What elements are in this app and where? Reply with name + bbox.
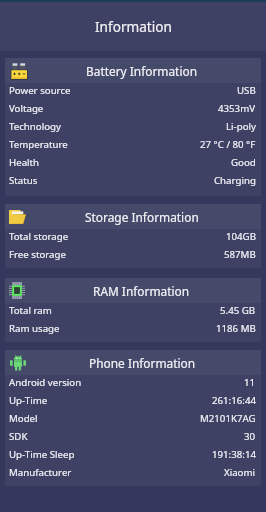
other: Phone xyxy=(9,355,27,371)
staticText: Xiaomi xyxy=(224,466,256,479)
staticText: 587MB xyxy=(224,248,256,261)
staticText: RAM Information xyxy=(93,283,190,299)
staticText: Free storage xyxy=(9,248,66,261)
button[interactable]: Voltage xyxy=(5,101,261,119)
button[interactable]: Temperature xyxy=(5,137,261,155)
staticText: Android version xyxy=(9,376,82,389)
staticText: Phone Information xyxy=(89,355,196,371)
staticText: 11 xyxy=(244,376,256,389)
staticText: Health xyxy=(9,156,40,169)
staticText: 4353mV xyxy=(218,102,256,115)
staticText: Battery Information xyxy=(86,63,198,79)
staticText: 191:38:14 xyxy=(212,448,256,461)
staticText: 27 °C / 80 °F xyxy=(200,138,256,151)
staticText: 261:16:44 xyxy=(212,394,256,407)
staticText: Charging xyxy=(214,174,256,187)
staticText: Li-poly xyxy=(226,120,256,133)
button[interactable]: Manufacturer xyxy=(5,465,261,483)
other: Battery xyxy=(9,63,27,79)
button[interactable]: Health xyxy=(5,155,261,173)
button[interactable]: Storage xyxy=(5,204,261,229)
staticText: Information xyxy=(95,17,172,36)
staticText: Status xyxy=(9,174,38,187)
button[interactable]: Power source xyxy=(5,83,261,101)
staticText: Model xyxy=(9,412,38,425)
staticText: Good xyxy=(231,156,256,169)
staticText: Voltage xyxy=(9,102,44,115)
button[interactable]: Ram usage xyxy=(5,321,261,339)
staticText: Manufacturer xyxy=(9,466,72,479)
button[interactable]: Phone xyxy=(5,350,261,375)
staticText: 104GB xyxy=(226,230,256,243)
staticText: SDK xyxy=(9,430,28,443)
staticText: Storage Information xyxy=(85,209,199,225)
staticText: Up-Time xyxy=(9,394,48,407)
button[interactable]: Technology xyxy=(5,119,261,137)
staticText: Temperature xyxy=(9,138,68,151)
button[interactable]: Model xyxy=(5,411,261,429)
staticText: Up-Time Sleep xyxy=(9,448,75,461)
staticText: Total storage xyxy=(9,230,69,243)
button[interactable]: Status xyxy=(5,173,261,191)
staticText: 30 xyxy=(244,430,256,443)
staticText: USB xyxy=(237,84,256,97)
button[interactable]: Up-Time Sleep xyxy=(5,447,261,465)
button[interactable]: SDK xyxy=(5,429,261,447)
button[interactable]: Android version xyxy=(5,375,261,393)
button[interactable]: Total ram xyxy=(5,303,261,321)
button[interactable]: Up-Time xyxy=(5,393,261,411)
button[interactable]: Total storage xyxy=(5,229,261,247)
staticText: 5.45 GB xyxy=(220,304,256,317)
other: RAM xyxy=(9,282,25,299)
staticText: M2101K7AG xyxy=(200,412,256,425)
staticText: 1186 MB xyxy=(216,322,256,335)
staticText: Power source xyxy=(9,84,71,97)
staticText: Ram usage xyxy=(9,322,60,335)
button[interactable]: Battery xyxy=(5,58,261,83)
button[interactable]: RAM xyxy=(5,278,261,303)
staticText: Technology xyxy=(9,120,61,133)
staticText: Total ram xyxy=(9,304,52,317)
button[interactable]: Free storage xyxy=(5,247,261,265)
other: Storage xyxy=(9,210,26,224)
